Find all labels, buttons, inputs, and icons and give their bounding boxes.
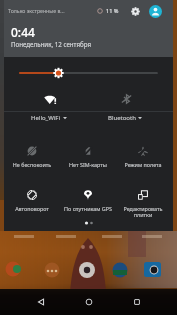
button[interactable] bbox=[60, 184, 116, 212]
button[interactable]: User account bbox=[149, 5, 162, 18]
button[interactable]: Back bbox=[26, 289, 56, 315]
button[interactable] bbox=[60, 140, 116, 168]
button[interactable]: Settings bbox=[129, 5, 141, 17]
staticText: Только экстренные в... bbox=[8, 7, 65, 14]
button[interactable]: Recent apps bbox=[122, 289, 152, 315]
staticText: По спутникам GPS bbox=[60, 205, 116, 212]
staticText: 0:44 bbox=[11, 24, 35, 40]
button[interactable] bbox=[11, 87, 87, 119]
button[interactable] bbox=[115, 140, 171, 168]
staticText: Редактировать плитки bbox=[115, 205, 171, 219]
button[interactable] bbox=[87, 87, 163, 119]
button[interactable] bbox=[4, 140, 60, 168]
staticText: Bluetooth bbox=[108, 114, 136, 122]
staticText: Не беспокоить bbox=[4, 161, 60, 168]
staticText: Нет SIM-карты bbox=[60, 161, 116, 168]
button[interactable]: Home bbox=[74, 289, 104, 315]
staticText: 11 % bbox=[106, 7, 119, 15]
button[interactable] bbox=[115, 184, 171, 212]
staticText: Hello_WiFi bbox=[31, 114, 61, 122]
button[interactable] bbox=[4, 184, 60, 212]
staticText: Автоповорот bbox=[4, 205, 60, 212]
staticText: Режим полета bbox=[115, 161, 171, 168]
staticText: Понедельник, 12 сентября bbox=[11, 40, 92, 48]
